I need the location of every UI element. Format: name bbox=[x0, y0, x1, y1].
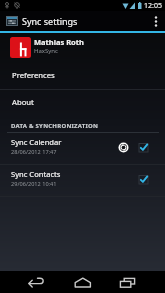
button[interactable]: Sync Contacts bbox=[0, 165, 165, 196]
button[interactable]: Preferences bbox=[0, 62, 165, 89]
staticText: 12:05 bbox=[144, 1, 162, 11]
button[interactable]: About bbox=[0, 90, 165, 116]
staticText: About bbox=[12, 97, 34, 107]
staticText: Sync settings bbox=[22, 15, 78, 27]
staticText: 29/06/2012 10:41 bbox=[11, 180, 57, 188]
staticText: Mathias Roth bbox=[34, 37, 84, 47]
button[interactable]: Sync Calendar bbox=[0, 133, 165, 164]
staticText: Preferences bbox=[12, 70, 55, 80]
button[interactable]: Mathias Roth bbox=[0, 33, 165, 62]
staticText: 28/06/2012 17:47 bbox=[11, 148, 57, 156]
button[interactable]: Recent apps bbox=[111, 271, 144, 293]
staticText: Sync Calendar bbox=[11, 137, 62, 147]
staticText: HaxSync bbox=[34, 47, 58, 55]
button[interactable]: More options bbox=[147, 11, 165, 31]
staticText: Sync Contacts bbox=[11, 169, 61, 179]
button[interactable]: Back bbox=[20, 271, 53, 293]
button[interactable]: Home bbox=[66, 271, 99, 293]
staticText: DATA & SYNCHRONIZATION bbox=[11, 122, 99, 130]
